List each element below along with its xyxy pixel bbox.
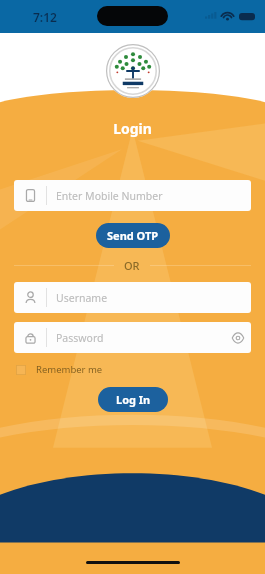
- staticText: Enter Mobile Number: [56, 189, 243, 203]
- staticText: OR: [124, 258, 140, 273]
- staticText: Send OTP: [107, 228, 159, 243]
- staticText: Login: [113, 119, 152, 138]
- staticText: Log In: [116, 392, 151, 407]
- staticText: Username: [56, 291, 243, 305]
- button[interactable]: Log In: [98, 387, 168, 412]
- button[interactable]: Remember me: [16, 363, 265, 376]
- button[interactable]: Password: [14, 322, 251, 353]
- button[interactable]: Send OTP: [96, 223, 170, 248]
- button[interactable]: Enter Mobile Number: [14, 180, 251, 211]
- button[interactable]: Show password: [225, 322, 251, 353]
- staticText: 7:12: [33, 9, 57, 25]
- staticText: Remember me: [36, 363, 103, 376]
- staticText: Password: [56, 331, 225, 345]
- button[interactable]: Username: [14, 282, 251, 313]
